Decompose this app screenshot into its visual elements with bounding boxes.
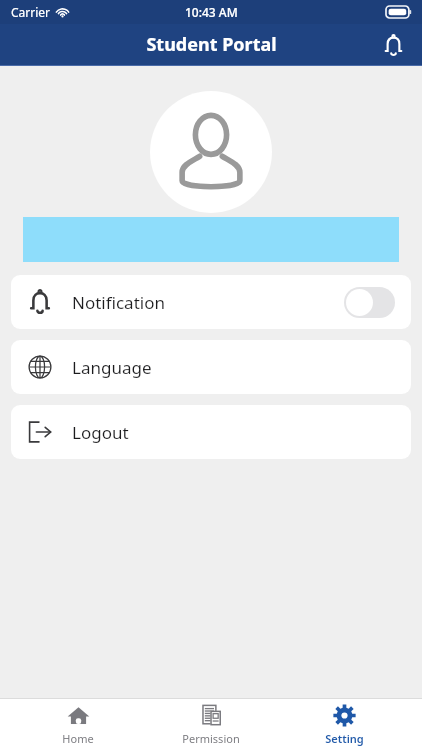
staticText: Permission [182,731,240,746]
button[interactable]: Notification toggle [344,287,395,318]
staticText: Home [62,731,94,746]
staticText: Setting [325,731,364,746]
staticText: Carrier [11,4,51,20]
staticText: Logout [72,421,129,444]
button[interactable]: Home [23,699,133,750]
staticText: 10:43 AM [185,4,238,20]
button[interactable]: Notification [11,275,411,329]
button[interactable]: Language [11,340,411,394]
button[interactable]: Logout [11,405,411,459]
button[interactable]: Permission [156,699,266,750]
staticText: Language [72,356,152,379]
staticText: Student Portal [146,32,277,57]
button[interactable]: Setting [289,699,399,750]
staticText: Notification [72,291,165,314]
button[interactable]: Notifications [374,26,412,64]
